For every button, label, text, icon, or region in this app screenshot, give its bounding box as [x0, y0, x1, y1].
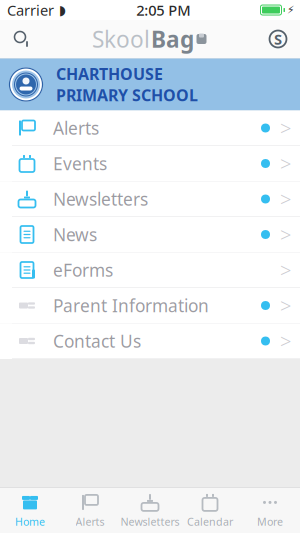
- staticText: ◗: [59, 2, 66, 17]
- staticText: >: [280, 186, 291, 212]
- button[interactable]: CHARTHOUSE: [0, 58, 300, 110]
- button[interactable]: Alerts: [60, 488, 120, 533]
- staticText: >: [280, 150, 291, 177]
- button[interactable]: Calendar: [180, 488, 240, 533]
- button[interactable]: News: [0, 217, 300, 252]
- staticText: Contact Us: [53, 329, 141, 352]
- staticText: >: [280, 292, 291, 319]
- staticText: Carrier: [7, 0, 54, 20]
- staticText: CHARTHOUSE: [56, 63, 163, 84]
- button[interactable]: Home: [0, 488, 60, 533]
- staticText: Newsletters: [53, 187, 148, 210]
- staticText: eForms: [53, 258, 113, 281]
- button[interactable]: More: [240, 488, 300, 533]
- button[interactable]: Sync: [256, 21, 300, 57]
- staticText: ⚡︎: [287, 4, 294, 16]
- staticText: PRIMARY SCHOOL: [56, 84, 198, 106]
- staticText: Alerts: [75, 514, 104, 529]
- staticText: >: [280, 257, 291, 283]
- button[interactable]: eForms: [0, 252, 300, 288]
- staticText: Newsletters: [120, 514, 179, 529]
- button[interactable]: Newsletters: [120, 488, 180, 533]
- staticText: Calendar: [187, 514, 233, 529]
- staticText: Parent Information: [53, 294, 209, 317]
- staticText: Home: [15, 514, 45, 529]
- staticText: News: [53, 223, 97, 246]
- staticText: >: [280, 221, 291, 248]
- staticText: Events: [53, 152, 107, 175]
- staticText: Alerts: [53, 116, 99, 139]
- button[interactable]: Events: [0, 146, 300, 181]
- staticText: >: [280, 328, 291, 354]
- button[interactable]: Newsletters: [0, 181, 300, 217]
- staticText: More: [257, 514, 283, 529]
- staticText: >: [280, 115, 291, 141]
- button[interactable]: Contact Us: [0, 323, 300, 359]
- button[interactable]: Parent Information: [0, 288, 300, 323]
- staticText: 2:05 PM: [136, 0, 190, 20]
- staticText: Skool: [92, 24, 150, 54]
- staticText: S: [274, 29, 282, 49]
- button[interactable]: Search: [0, 21, 44, 57]
- staticText: Bag: [151, 24, 194, 54]
- button[interactable]: Alerts: [0, 110, 300, 146]
